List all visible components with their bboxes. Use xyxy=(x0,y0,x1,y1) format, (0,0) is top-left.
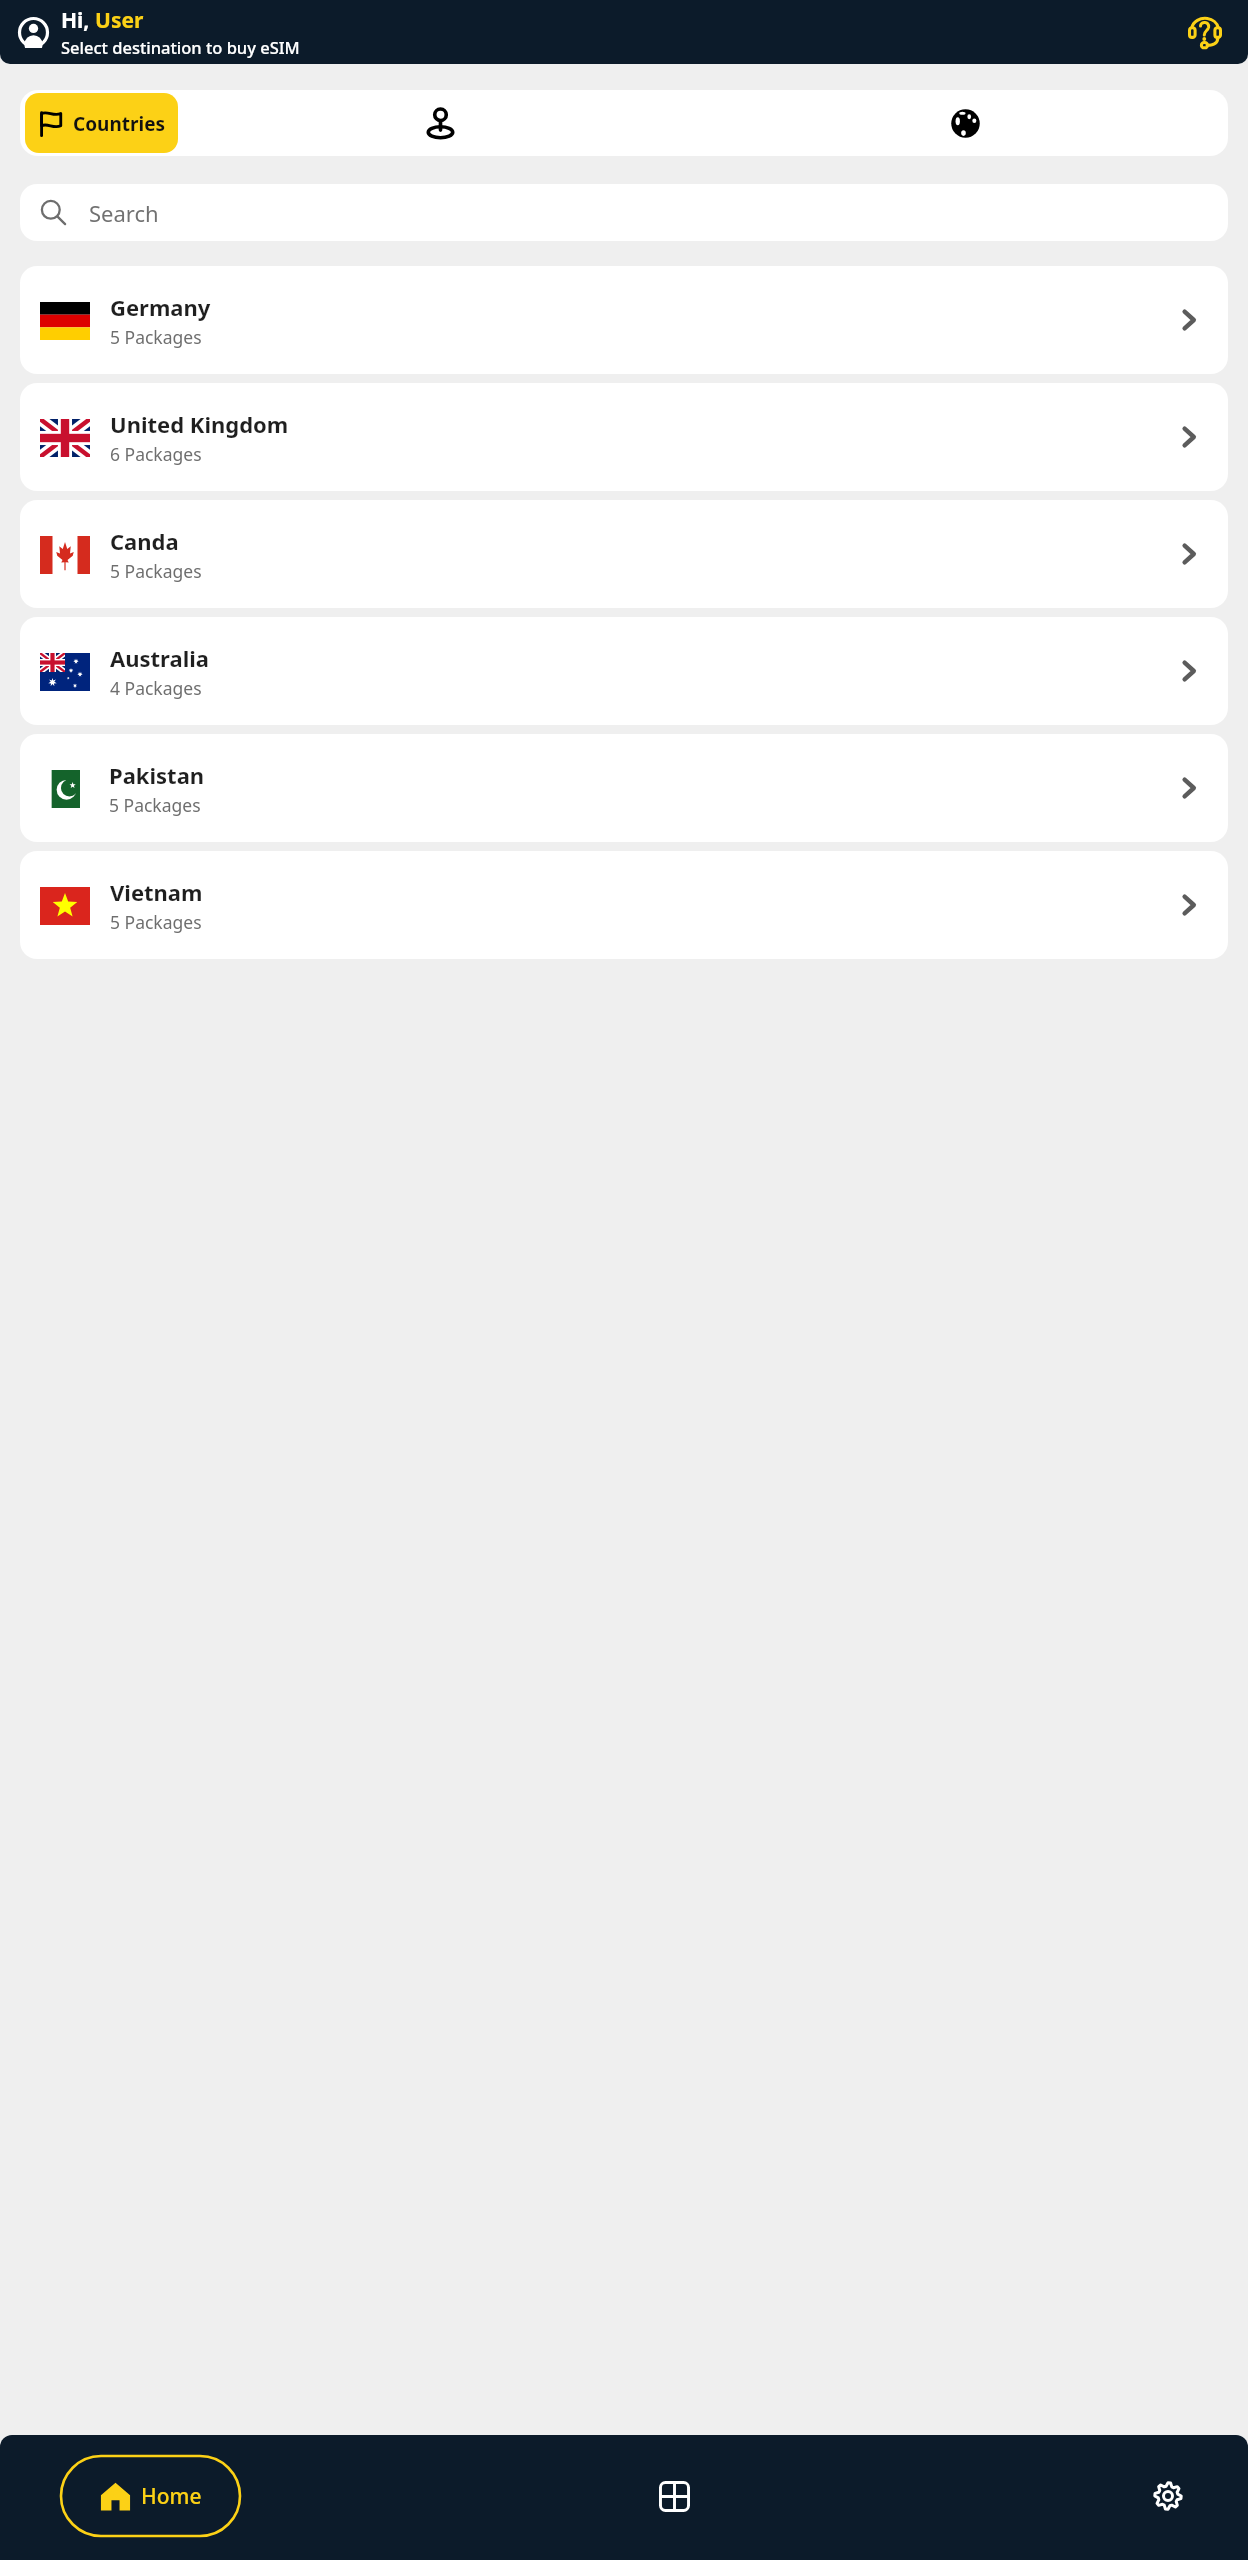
button[interactable]: Open Australia xyxy=(1172,654,1206,688)
button[interactable]: Regions xyxy=(178,90,703,156)
staticText: Home xyxy=(141,2482,202,2511)
staticText: Search xyxy=(89,198,159,228)
staticText: Select destination to buy eSIM xyxy=(61,36,300,58)
staticText: Hi, xyxy=(61,6,95,35)
button[interactable]: Germany xyxy=(20,266,1228,374)
staticText: User xyxy=(95,6,144,35)
button[interactable]: Open Canda xyxy=(1172,537,1206,571)
staticText: United Kingdom xyxy=(110,409,289,439)
button[interactable]: Search xyxy=(20,184,1228,241)
staticText: 5 Packages xyxy=(109,793,201,817)
button[interactable]: Countries xyxy=(25,93,178,153)
staticText: Pakistan xyxy=(109,760,205,790)
button[interactable]: Canda xyxy=(20,500,1228,608)
button[interactable]: Dashboard xyxy=(634,2456,714,2536)
staticText: Vietnam xyxy=(110,877,203,907)
button[interactable]: Settings xyxy=(1128,2456,1208,2536)
button[interactable]: Support xyxy=(1182,9,1228,55)
button[interactable]: Vietnam xyxy=(20,851,1228,959)
button[interactable]: Pakistan xyxy=(20,734,1228,842)
staticText: 5 Packages xyxy=(110,325,202,349)
staticText: 5 Packages xyxy=(110,910,202,934)
button[interactable]: Home xyxy=(61,2456,240,2536)
button[interactable]: Global xyxy=(703,90,1228,156)
button[interactable]: Open United Kingdom xyxy=(1172,420,1206,454)
button[interactable]: Open Pakistan xyxy=(1172,771,1206,805)
staticText: 4 Packages xyxy=(110,676,202,700)
staticText: Countries xyxy=(73,111,166,137)
staticText: Germany xyxy=(110,292,211,322)
button[interactable]: United Kingdom xyxy=(20,383,1228,491)
button[interactable]: Open Vietnam xyxy=(1172,888,1206,922)
staticText: 5 Packages xyxy=(110,559,202,583)
button[interactable]: Open Germany xyxy=(1172,303,1206,337)
staticText: Australia xyxy=(110,643,210,673)
staticText: Canda xyxy=(110,526,179,556)
button[interactable]: Australia xyxy=(20,617,1228,725)
staticText: 6 Packages xyxy=(110,442,202,466)
